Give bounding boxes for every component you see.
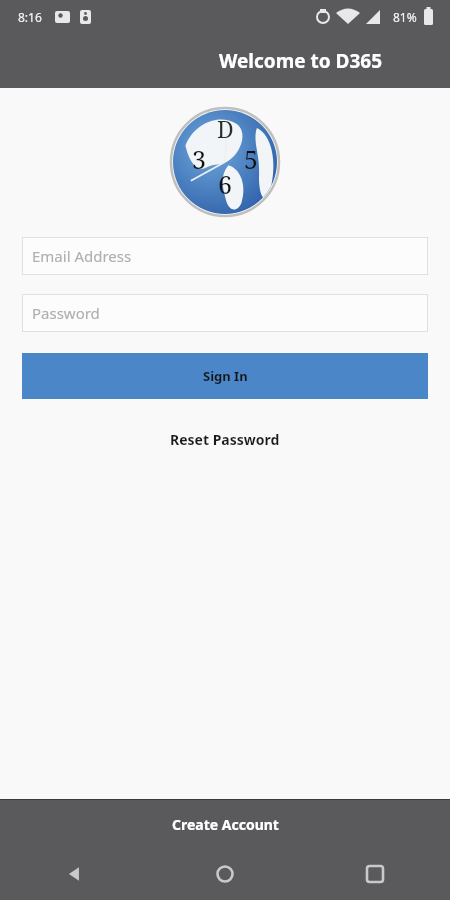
button[interactable]: Email Address (22, 237, 428, 275)
staticText: Password (32, 303, 100, 323)
staticText: 3 (192, 142, 206, 176)
button[interactable]: Create Account (0, 800, 450, 848)
button[interactable]: Recent apps (300, 848, 450, 900)
staticText: Email Address (32, 246, 132, 266)
button[interactable]: Sign In (22, 353, 428, 399)
button[interactable]: Home (150, 848, 300, 900)
button[interactable]: Back (0, 848, 150, 900)
staticText: 6 (218, 167, 232, 201)
staticText: Create Account (172, 815, 279, 834)
button[interactable]: Reset Password (154, 424, 296, 455)
staticText: 5 (244, 142, 258, 176)
staticText: 8:16 (18, 9, 42, 25)
staticText: D (217, 113, 234, 144)
button[interactable]: Password (22, 294, 428, 332)
staticText: Sign In (203, 367, 248, 385)
staticText: 81% (393, 9, 417, 25)
staticText: Reset Password (170, 430, 280, 449)
staticText: Welcome to D365 (219, 48, 383, 74)
